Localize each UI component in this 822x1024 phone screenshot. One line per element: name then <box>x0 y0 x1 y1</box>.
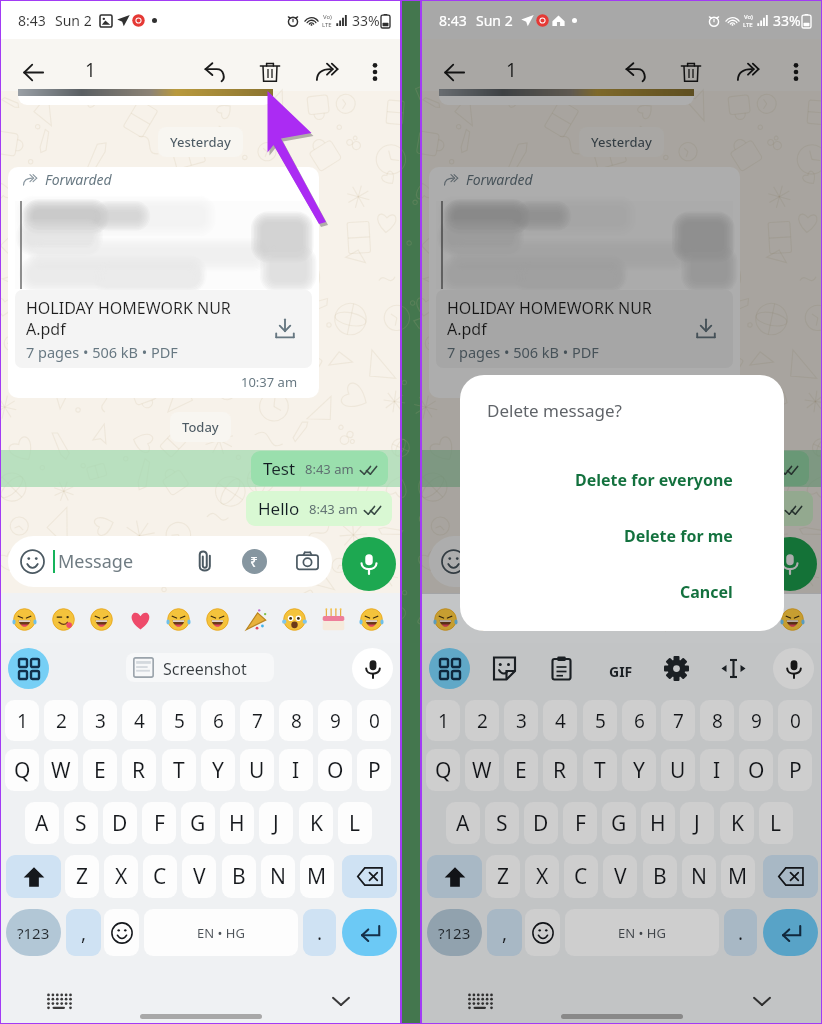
button[interactable]: Emoji <box>320 606 347 633</box>
button[interactable]: M <box>721 855 755 898</box>
button[interactable]: Shift <box>427 855 482 898</box>
button[interactable]: Switch keyboard <box>44 985 74 1015</box>
button[interactable]: 6 <box>622 700 656 741</box>
button[interactable]: F <box>142 802 176 844</box>
button[interactable]: Emoji <box>11 606 38 633</box>
button[interactable]: O <box>318 749 352 791</box>
button[interactable]: Voice message <box>763 537 817 591</box>
button[interactable]: , <box>487 909 522 956</box>
button[interactable]: Text editing <box>721 656 746 681</box>
button[interactable]: Emoji <box>88 606 115 633</box>
button[interactable]: S <box>485 802 519 844</box>
button[interactable]: Settings <box>664 656 689 681</box>
button[interactable]: 0 <box>357 700 391 741</box>
button[interactable]: 1 <box>426 700 460 741</box>
button[interactable]: Q <box>426 749 460 791</box>
button[interactable]: 2 <box>465 700 499 741</box>
button[interactable]: . <box>724 909 757 956</box>
button[interactable]: Emoji <box>243 606 270 633</box>
button[interactable]: Emoji <box>432 606 459 633</box>
button[interactable]: Delete for everyone <box>460 461 784 499</box>
button[interactable]: H <box>641 802 675 844</box>
button[interactable]: ?123 <box>6 909 61 956</box>
button[interactable]: More options <box>357 54 393 90</box>
button[interactable]: Enter <box>342 909 397 956</box>
button[interactable]: L <box>759 802 793 844</box>
button[interactable]: Emoji <box>548 606 575 633</box>
button[interactable]: Forward <box>309 54 345 90</box>
button[interactable]: Emoji <box>50 606 77 633</box>
button[interactable]: Cancel <box>460 573 784 611</box>
button[interactable]: Emoji <box>586 606 613 633</box>
button[interactable]: Forward <box>730 54 766 90</box>
button[interactable]: More options <box>778 54 814 90</box>
button[interactable]: X <box>104 855 138 898</box>
button[interactable]: Enter <box>763 909 818 956</box>
button[interactable]: D <box>103 802 137 844</box>
button[interactable]: Emoji <box>664 606 691 633</box>
button[interactable]: I <box>279 749 313 791</box>
button[interactable]: Voice input <box>773 648 814 689</box>
button[interactable]: Emoji keyboard <box>104 909 139 956</box>
button[interactable]: C <box>564 855 598 898</box>
button[interactable]: HOLIDAY HOMEWORK NUR A.pdf <box>15 290 312 368</box>
button[interactable]: HOLIDAY HOMEWORK NUR A.pdf <box>436 290 733 368</box>
button[interactable]: Apps <box>8 648 49 689</box>
button[interactable]: Backspace <box>763 855 818 898</box>
button[interactable]: Z <box>65 855 99 898</box>
button[interactable]: GIF <box>606 656 636 686</box>
button[interactable]: Hide keyboard <box>747 986 777 1016</box>
button[interactable]: Z <box>486 855 520 898</box>
button[interactable]: 4 <box>543 700 577 741</box>
button[interactable]: EN • HG <box>144 909 298 956</box>
button[interactable]: J <box>680 802 714 844</box>
button[interactable]: U <box>240 749 274 791</box>
button[interactable]: H <box>220 802 254 844</box>
button[interactable]: Emoji <box>127 606 154 633</box>
button[interactable]: B <box>222 855 256 898</box>
button[interactable]: 9 <box>739 700 773 741</box>
button[interactable]: G <box>602 802 636 844</box>
button[interactable]: 7 <box>240 700 274 741</box>
button[interactable]: Apps <box>429 648 470 689</box>
button[interactable]: 3 <box>504 700 538 741</box>
button[interactable]: E <box>83 749 117 791</box>
button[interactable]: Emoji <box>741 606 768 633</box>
button[interactable]: J <box>259 802 293 844</box>
button[interactable]: T <box>583 749 617 791</box>
button[interactable]: N <box>261 855 295 898</box>
button[interactable]: 5 <box>162 700 196 741</box>
button[interactable]: 3 <box>83 700 117 741</box>
button[interactable]: 8 <box>700 700 734 741</box>
button[interactable]: 7 <box>661 700 695 741</box>
button[interactable]: P <box>778 749 812 791</box>
button[interactable]: V <box>182 855 216 898</box>
button[interactable]: V <box>603 855 637 898</box>
button[interactable]: Y <box>622 749 656 791</box>
button[interactable]: Emoji <box>358 606 385 633</box>
button[interactable]: I <box>700 749 734 791</box>
button[interactable]: 2 <box>44 700 78 741</box>
button[interactable]: Delete <box>252 54 288 90</box>
button[interactable]: 4 <box>122 700 156 741</box>
button[interactable]: R <box>543 749 577 791</box>
button[interactable]: 5 <box>583 700 617 741</box>
button[interactable]: S <box>64 802 98 844</box>
button[interactable]: K <box>720 802 754 844</box>
button[interactable]: Message <box>8 536 332 587</box>
button[interactable]: D <box>524 802 558 844</box>
button[interactable]: Emoji <box>509 606 536 633</box>
button[interactable]: K <box>299 802 333 844</box>
button[interactable]: Clipboard <box>549 656 574 681</box>
button[interactable]: Emoji <box>779 606 806 633</box>
button[interactable]: A <box>25 802 59 844</box>
button[interactable]: W <box>44 749 78 791</box>
button[interactable]: N <box>682 855 716 898</box>
button[interactable]: Emoji <box>165 606 192 633</box>
button[interactable]: Emoji keyboard <box>525 909 560 956</box>
button[interactable]: Stickers <box>492 656 517 681</box>
button[interactable]: R <box>122 749 156 791</box>
button[interactable]: O <box>739 749 773 791</box>
button[interactable]: EN • HG <box>565 909 719 956</box>
button[interactable]: 8 <box>279 700 313 741</box>
